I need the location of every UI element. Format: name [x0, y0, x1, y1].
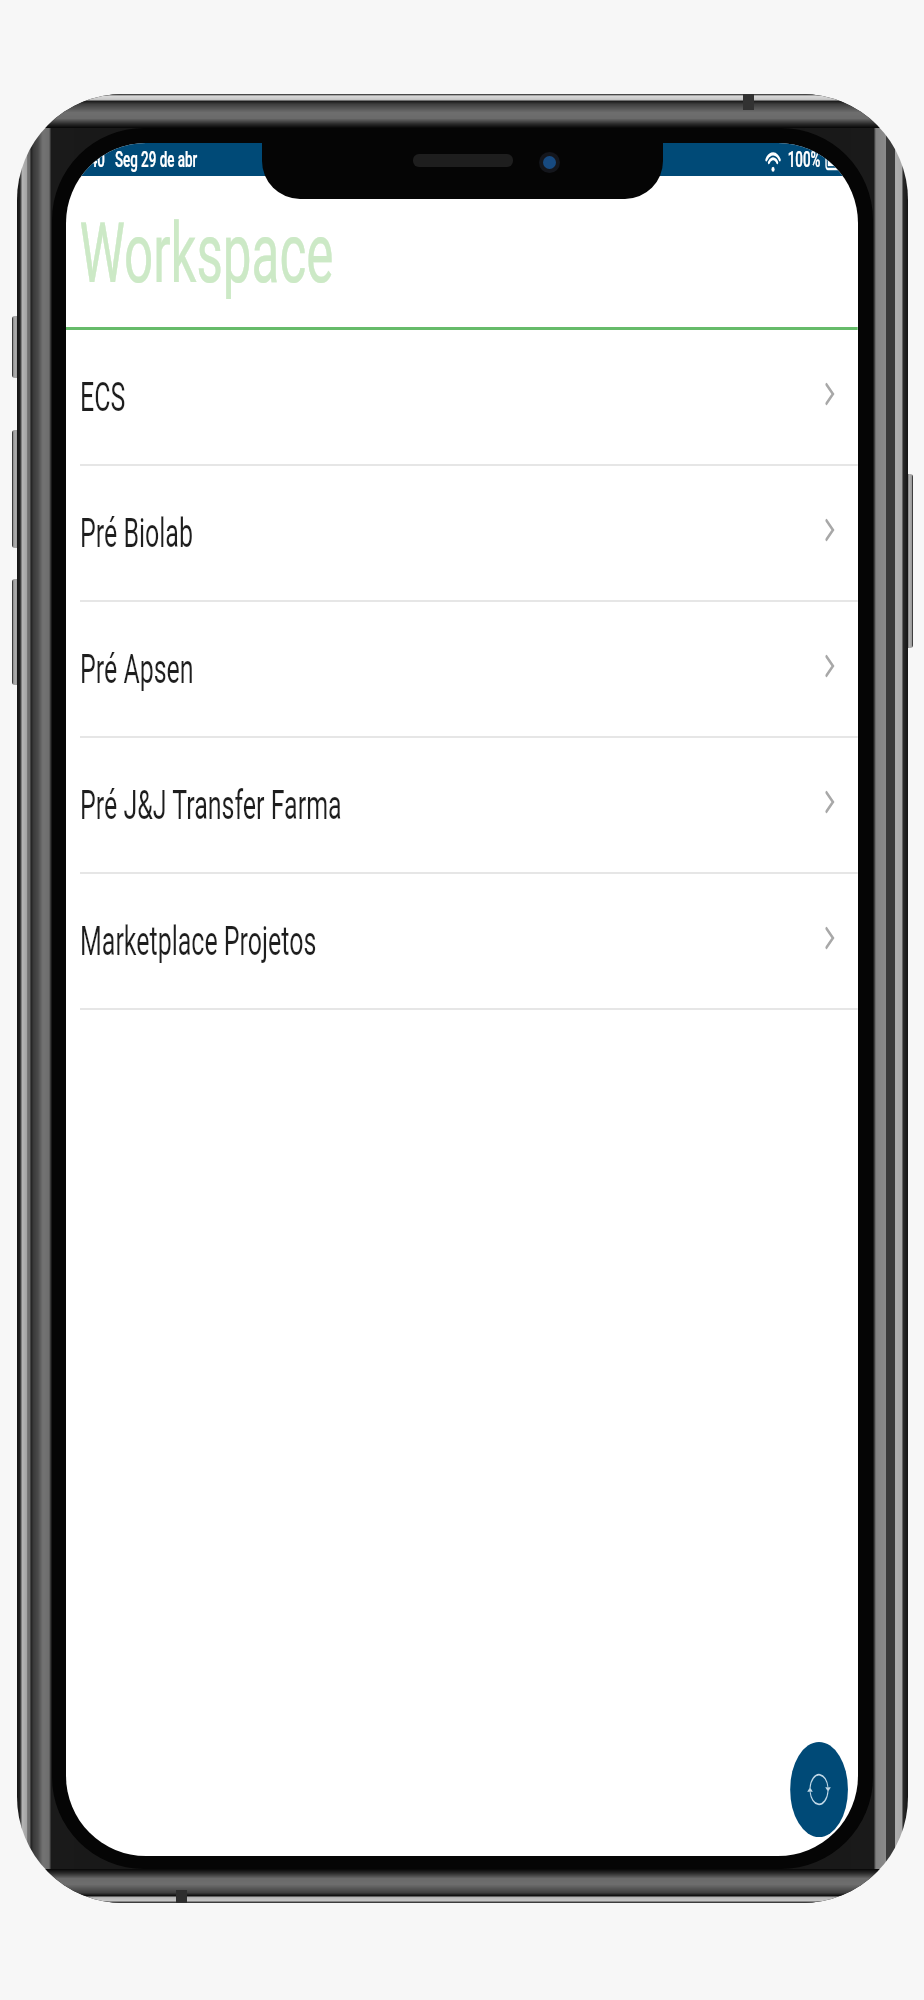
- staticText: 100%: [788, 147, 821, 173]
- button[interactable]: Sync: [790, 1742, 848, 1837]
- staticText: 12:40 Seg 29 de abr: [71, 147, 198, 173]
- button[interactable]: ECS: [66, 330, 858, 466]
- staticText: Pré Biolab: [80, 509, 193, 557]
- button[interactable]: Marketplace Projetos: [66, 874, 858, 1010]
- staticText: Pré J&J Transfer Farma: [80, 781, 342, 829]
- button[interactable]: Pré J&J Transfer Farma: [66, 738, 858, 874]
- button[interactable]: Pré Apsen: [66, 602, 858, 738]
- staticText: ECS: [80, 373, 126, 421]
- button[interactable]: Pré Biolab: [66, 466, 858, 602]
- staticText: Pré Apsen: [80, 645, 194, 693]
- staticText: Marketplace Projetos: [80, 917, 317, 965]
- staticText: Workspace: [79, 204, 333, 302]
